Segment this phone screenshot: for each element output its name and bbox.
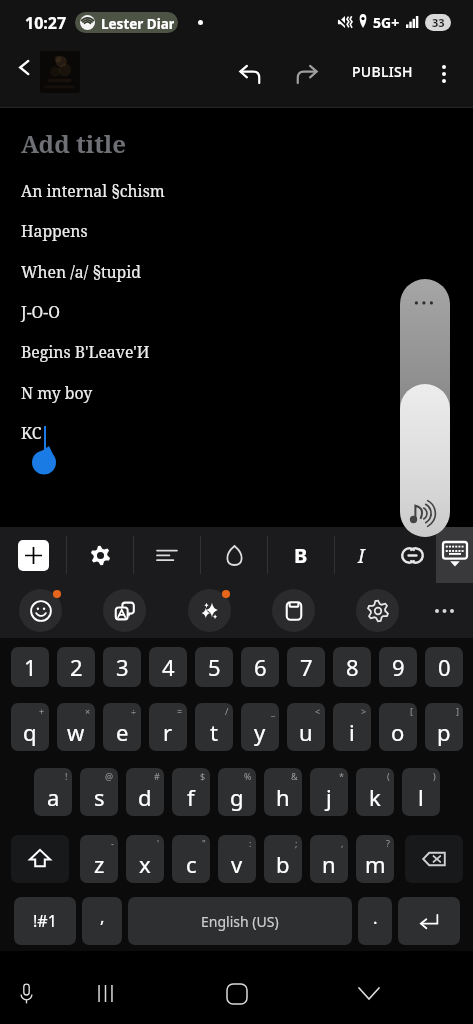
button[interactable]: Volume: [400, 279, 450, 537]
button[interactable]: 7: [287, 647, 325, 687]
button[interactable]: +: [11, 703, 49, 751]
staticText: +: [39, 705, 45, 717]
button[interactable]: 4: [149, 647, 187, 687]
button[interactable]: 8: [333, 647, 371, 687]
staticText: 1: [24, 652, 37, 682]
staticText: $: [200, 770, 206, 782]
button[interactable]: :: [218, 835, 256, 883]
button[interactable]: %: [218, 768, 256, 816]
button[interactable]: Format: [0, 527, 66, 583]
staticText: ,: [100, 905, 105, 928]
button[interactable]: @: [80, 768, 118, 816]
staticText: m: [365, 849, 386, 879]
button[interactable]: 5: [195, 647, 233, 687]
button[interactable]: &: [264, 768, 302, 816]
button[interactable]: AI assist: [188, 589, 231, 632]
button[interactable]: Translate: [103, 589, 146, 632]
staticText: ;: [295, 837, 298, 849]
button[interactable]: Emoji: [19, 589, 62, 632]
staticText: Lester Diary: [101, 15, 174, 33]
button[interactable]: Format: [67, 527, 133, 583]
staticText: z: [94, 849, 105, 879]
staticText: r: [163, 717, 173, 747]
button[interactable]: =: [149, 703, 187, 751]
staticText: ": [202, 837, 206, 849]
staticText: _: [271, 705, 275, 717]
button[interactable]: Undo: [228, 54, 272, 98]
button[interactable]: Redo: [285, 54, 329, 98]
staticText: w: [67, 717, 85, 747]
staticText: :: [249, 837, 252, 849]
staticText: 3: [116, 652, 129, 682]
button[interactable]: 3: [103, 647, 141, 687]
button[interactable]: Cover image: [40, 51, 80, 93]
staticText: (: [387, 770, 390, 782]
button[interactable]: !: [34, 768, 72, 816]
button[interactable]: 6: [241, 647, 279, 687]
button[interactable]: #: [126, 768, 164, 816]
staticText: -: [111, 837, 114, 849]
staticText: .: [373, 906, 378, 929]
button[interactable]: _: [241, 703, 279, 751]
button[interactable]: [: [379, 703, 417, 751]
button[interactable]: Hide keyboard: [346, 971, 391, 1016]
button[interactable]: More options: [424, 54, 464, 94]
staticText: =: [177, 705, 183, 717]
button[interactable]: Hide keyboard: [436, 527, 473, 583]
staticText: 8: [346, 652, 359, 682]
button[interactable]: More: [422, 589, 466, 633]
button[interactable]: Enter: [398, 897, 460, 945]
button[interactable]: Format: [268, 527, 334, 583]
button[interactable]: Settings: [356, 589, 399, 632]
button[interactable]: Now playing: [75, 12, 178, 33]
button[interactable]: ): [402, 768, 440, 816]
button[interactable]: $: [172, 768, 210, 816]
staticText: u: [299, 717, 313, 747]
button[interactable]: 0: [425, 647, 463, 687]
staticText: N my boy: [21, 382, 93, 404]
button[interactable]: ,: [310, 835, 348, 883]
button[interactable]: ': [126, 835, 164, 883]
button[interactable]: Format: [134, 527, 200, 583]
button[interactable]: 1: [11, 647, 49, 687]
button[interactable]: *: [310, 768, 348, 816]
button[interactable]: Clipboard: [272, 589, 315, 632]
button[interactable]: Format: [335, 527, 388, 583]
button[interactable]: ]: [425, 703, 463, 751]
staticText: v: [231, 849, 243, 879]
staticText: Begins B'Leave'И: [21, 341, 150, 363]
button[interactable]: ": [172, 835, 210, 883]
button[interactable]: Format: [201, 527, 267, 583]
button[interactable]: Voice input: [4, 971, 49, 1016]
button[interactable]: 2: [57, 647, 95, 687]
button[interactable]: -: [80, 835, 118, 883]
staticText: PUBLISH: [352, 62, 413, 81]
button[interactable]: (: [356, 768, 394, 816]
button[interactable]: Shift: [11, 835, 69, 883]
button[interactable]: ?: [356, 835, 394, 883]
button[interactable]: ×: [57, 703, 95, 751]
staticText: KC: [21, 422, 42, 444]
staticText: When /a/ §tupid: [21, 261, 142, 283]
button[interactable]: Home: [214, 971, 259, 1016]
button[interactable]: ;: [264, 835, 302, 883]
button[interactable]: <: [287, 703, 325, 751]
button[interactable]: Recents: [83, 971, 128, 1016]
button[interactable]: Back: [6, 49, 42, 85]
button[interactable]: /: [195, 703, 233, 751]
staticText: x: [139, 849, 151, 879]
button[interactable]: English (US): [128, 897, 352, 945]
staticText: I: [358, 542, 365, 569]
button[interactable]: Backspace: [405, 835, 463, 883]
staticText: a: [47, 782, 60, 812]
button[interactable]: .: [358, 897, 392, 945]
staticText: ': [157, 837, 160, 849]
button[interactable]: 9: [379, 647, 417, 687]
staticText: Add title: [21, 127, 127, 160]
button[interactable]: Format: [388, 527, 436, 583]
button[interactable]: !#1: [14, 897, 76, 945]
button[interactable]: >: [333, 703, 371, 751]
button[interactable]: ,: [82, 897, 122, 945]
button[interactable]: ÷: [103, 703, 141, 751]
button[interactable]: PUBLISH: [344, 53, 421, 90]
